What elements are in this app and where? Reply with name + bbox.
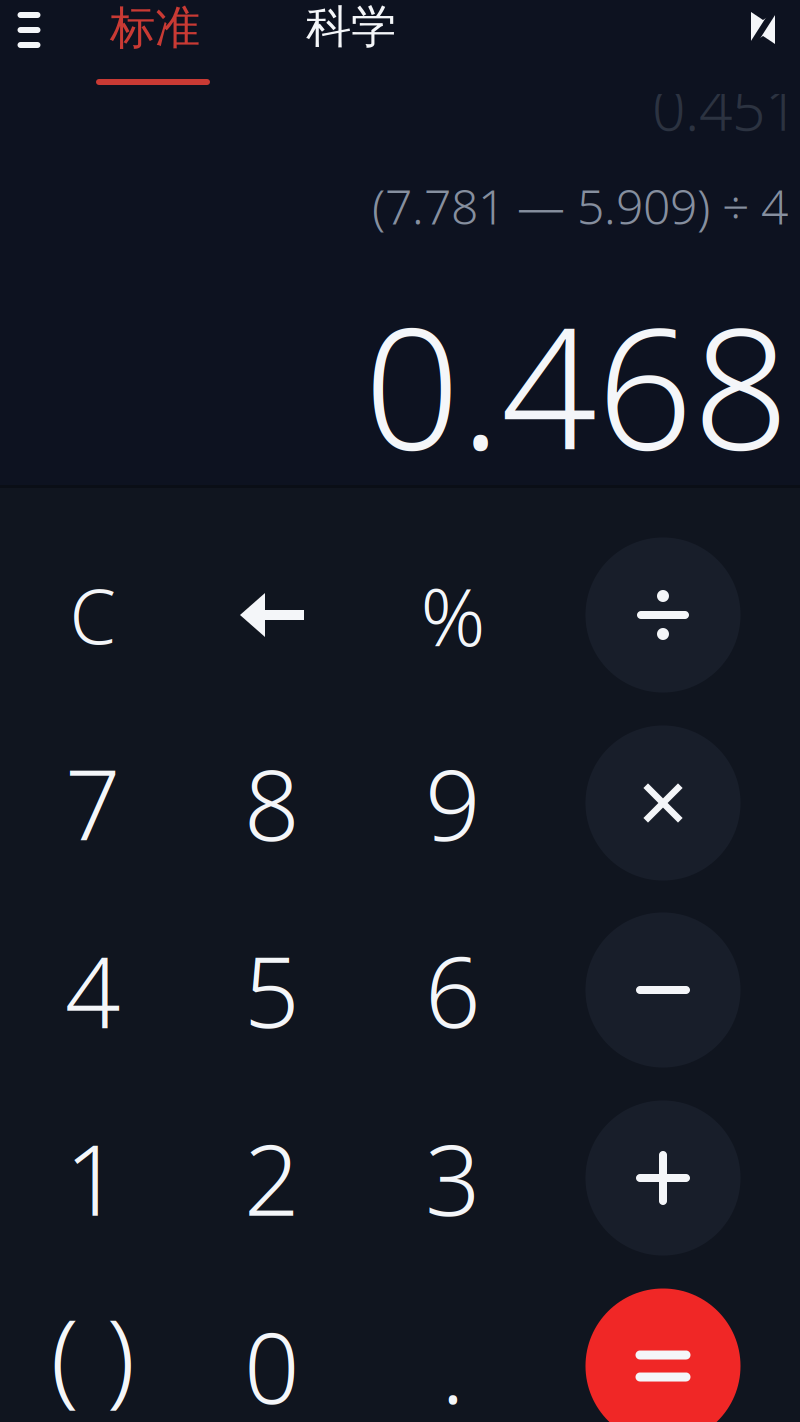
staticText: 科学 xyxy=(306,0,396,55)
button[interactable]: 2 xyxy=(183,1085,361,1271)
button[interactable]: 4 xyxy=(4,897,182,1083)
staticText: 0.468 xyxy=(364,272,789,496)
button[interactable]: Backspace xyxy=(183,522,361,708)
staticText: 2 xyxy=(244,1113,300,1243)
staticText: C xyxy=(69,565,116,665)
button[interactable]: C xyxy=(4,522,182,708)
button[interactable]: 3 xyxy=(364,1085,542,1271)
staticText: 0.451 xyxy=(652,69,798,147)
button[interactable]: ( ) xyxy=(4,1273,182,1422)
staticText: . xyxy=(441,1301,465,1422)
staticText: 0 xyxy=(244,1301,300,1422)
staticText: (7.781 — 5.909) ÷ 4 xyxy=(372,174,788,238)
staticText: % xyxy=(420,562,485,668)
staticText: 1 xyxy=(65,1113,121,1243)
button[interactable]: 8 xyxy=(183,710,361,896)
button[interactable]: 科学 xyxy=(286,0,416,57)
staticText: 标准 xyxy=(110,0,200,56)
button[interactable]: Mute xyxy=(750,11,776,45)
staticText: 7 xyxy=(65,738,121,868)
button[interactable]: 7 xyxy=(4,710,182,896)
staticText: 9 xyxy=(425,738,481,868)
staticText: 4 xyxy=(65,925,121,1055)
button[interactable]: 标准 xyxy=(90,0,220,58)
button[interactable]: Add xyxy=(574,1085,752,1271)
staticText: 5 xyxy=(244,925,300,1055)
staticText: 3 xyxy=(425,1113,481,1243)
staticText: 8 xyxy=(244,738,300,868)
staticText: ( ) xyxy=(50,1287,135,1422)
button[interactable]: % xyxy=(364,522,542,708)
button[interactable]: 1 xyxy=(4,1085,182,1271)
button[interactable]: . xyxy=(364,1273,542,1422)
button[interactable]: 0 xyxy=(183,1273,361,1422)
button[interactable]: 6 xyxy=(364,897,542,1083)
button[interactable]: Equals xyxy=(574,1273,752,1422)
button[interactable]: 9 xyxy=(364,710,542,896)
button[interactable]: Multiply xyxy=(574,710,752,896)
button[interactable]: 5 xyxy=(183,897,361,1083)
button[interactable]: Subtract xyxy=(574,897,752,1083)
button[interactable]: Divide xyxy=(574,522,752,708)
button[interactable]: Menu xyxy=(7,8,51,52)
staticText: 6 xyxy=(425,925,481,1055)
